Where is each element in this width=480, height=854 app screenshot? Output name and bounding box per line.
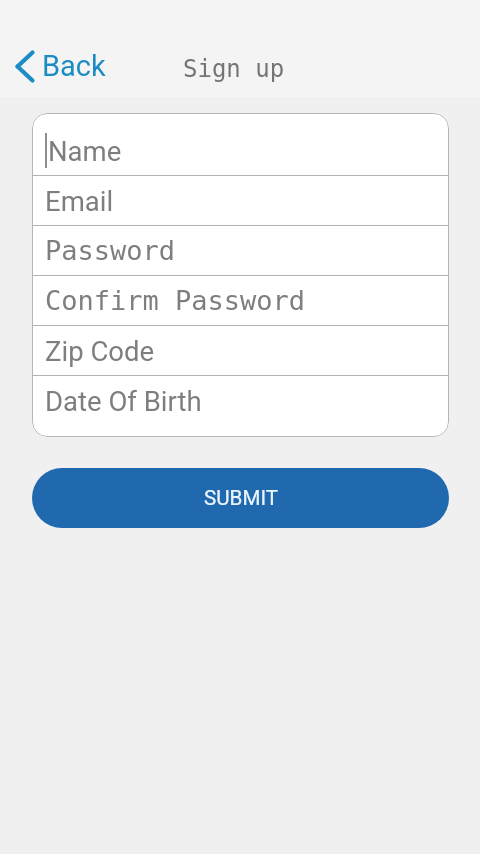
button[interactable]: Date Of Birth	[32, 376, 449, 426]
button[interactable]: Zip Code	[32, 326, 449, 375]
staticText: SUBMIT	[204, 486, 278, 510]
button[interactable]: Email	[32, 176, 449, 225]
staticText: Email	[45, 185, 114, 217]
staticText: Confirm Password	[45, 285, 306, 316]
staticText: Password	[45, 235, 176, 266]
staticText: Back	[42, 49, 106, 83]
staticText: Name	[48, 135, 122, 167]
staticText: Zip Code	[45, 335, 155, 367]
other: Back	[13, 44, 37, 88]
button[interactable]: Password	[32, 226, 449, 275]
staticText: Date Of Birth	[45, 385, 202, 417]
button[interactable]: SUBMIT	[32, 468, 449, 528]
button[interactable]: Name	[32, 126, 449, 175]
button[interactable]: Back	[0, 44, 116, 88]
staticText: Sign up	[183, 55, 285, 83]
button[interactable]: Confirm Password	[32, 276, 449, 325]
